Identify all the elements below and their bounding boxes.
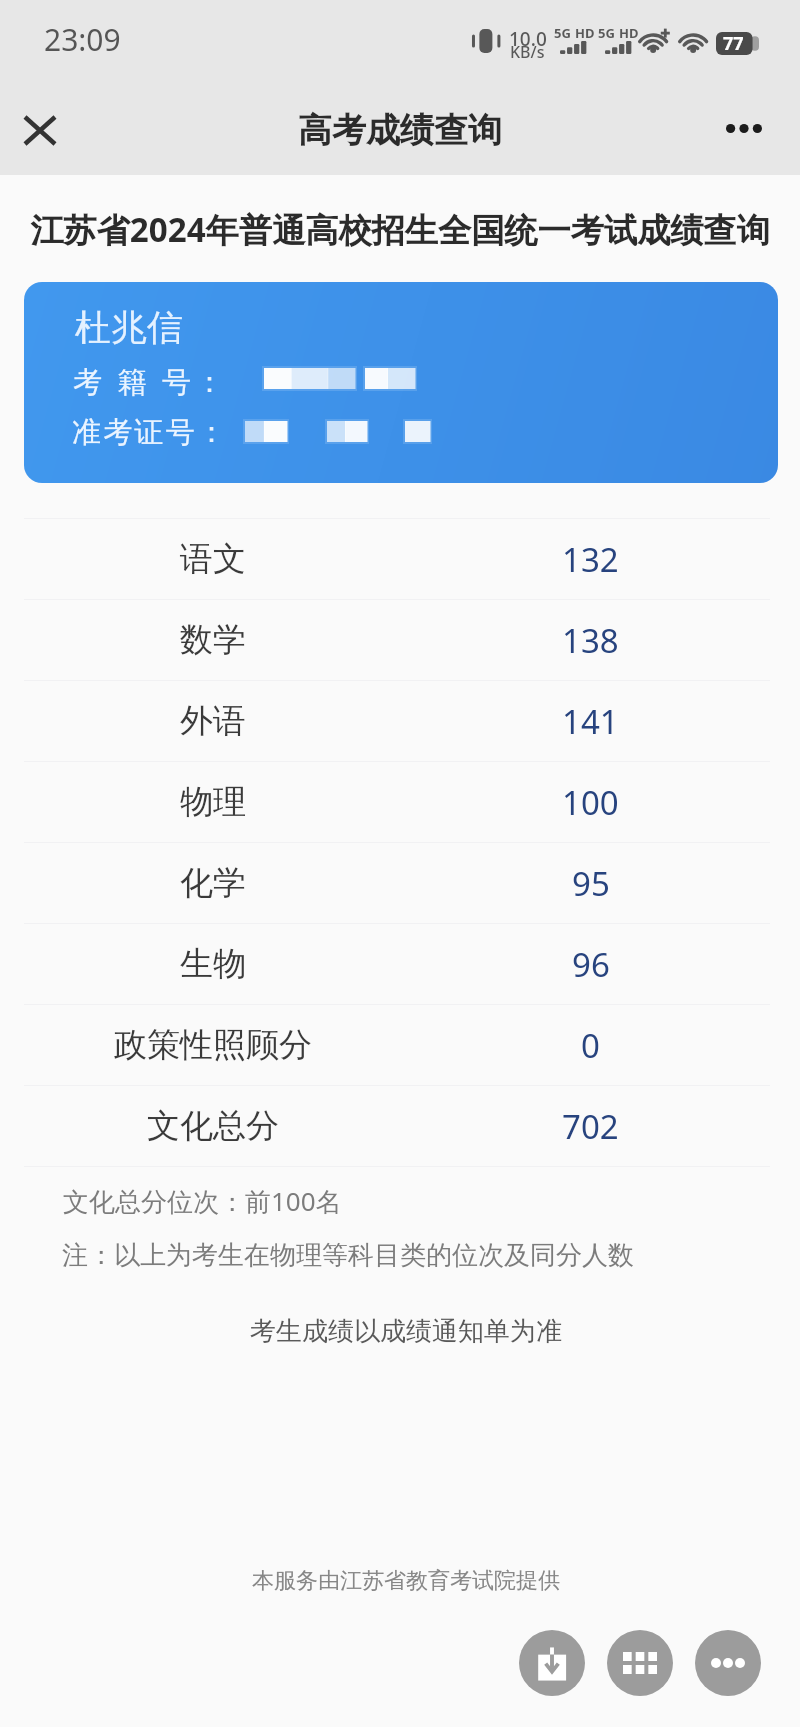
staticText: 生物 <box>180 943 246 985</box>
staticText: HD <box>575 24 595 42</box>
button[interactable]: 物理 <box>24 762 770 842</box>
button[interactable]: 化学 <box>24 843 770 923</box>
staticText: 141 <box>562 699 619 744</box>
staticText: 5G <box>598 24 615 42</box>
button[interactable]: More options <box>713 97 775 159</box>
staticText: 5G <box>554 24 571 42</box>
staticText: 准考证号： <box>71 414 227 451</box>
button[interactable]: 政策性照顾分 <box>24 1005 770 1085</box>
staticText: 95 <box>572 861 610 906</box>
staticText: 江苏省2024年普通高校招生全国统一考试成绩查询 <box>0 207 800 252</box>
staticText: 外语 <box>180 700 246 742</box>
staticText: 本服务由江苏省教育考试院提供 <box>6 1567 800 1595</box>
staticText: 138 <box>562 618 619 663</box>
button[interactable]: Download <box>519 1630 585 1696</box>
staticText: 702 <box>562 1104 619 1149</box>
staticText: 23:09 <box>44 19 121 60</box>
button[interactable]: Close <box>9 99 71 161</box>
staticText: 132 <box>562 537 619 582</box>
staticText: 杜兆信 <box>75 305 183 350</box>
button[interactable]: 文化总分 <box>24 1086 770 1166</box>
staticText: 物理 <box>180 781 246 823</box>
button[interactable]: 外语 <box>24 681 770 761</box>
button[interactable]: 生物 <box>24 924 770 1004</box>
staticText: 高考成绩查询 <box>298 109 502 152</box>
staticText: 考 籍 号： <box>73 361 229 401</box>
staticText: 77 <box>723 31 744 56</box>
staticText: 文化总分 <box>147 1105 279 1147</box>
staticText: 0 <box>581 1023 600 1068</box>
staticText: 文化总分位次：前100名 <box>63 1183 342 1219</box>
staticText: 注：以上为考生在物理等科目类的位次及同分人数 <box>62 1239 634 1272</box>
button[interactable]: Apps <box>607 1630 673 1696</box>
staticText: KB/s <box>510 41 545 63</box>
staticText: 96 <box>572 942 610 987</box>
button[interactable]: More <box>695 1630 761 1696</box>
staticText: 考生成绩以成绩通知单为准 <box>6 1315 800 1348</box>
staticText: 政策性照顾分 <box>114 1024 312 1066</box>
staticText: 化学 <box>180 862 246 904</box>
button[interactable]: 数学 <box>24 600 770 680</box>
staticText: 数学 <box>180 619 246 661</box>
staticText: 10.0 <box>509 26 547 52</box>
staticText: HD <box>619 24 639 42</box>
staticText: 100 <box>562 780 619 825</box>
staticText: 语文 <box>180 538 246 580</box>
button[interactable]: 语文 <box>24 519 770 599</box>
